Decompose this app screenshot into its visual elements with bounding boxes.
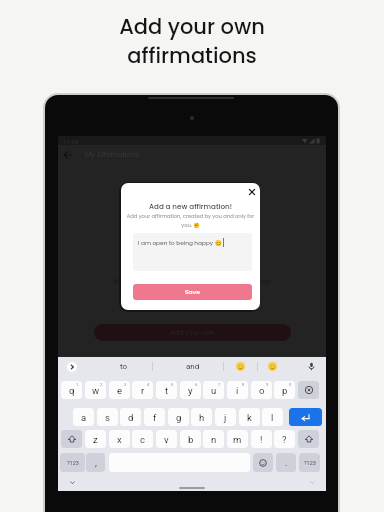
button[interactable]: m [227, 430, 248, 448]
button[interactable]: y [180, 381, 201, 399]
button[interactable]: Hide keyboard [68, 478, 77, 487]
button[interactable]: t [156, 381, 177, 399]
staticText: ? [282, 434, 287, 445]
button[interactable]: to [109, 357, 139, 376]
button[interactable]: w [85, 381, 106, 399]
staticText: Add a new affirmation! [149, 201, 233, 211]
button[interactable]: I am open to being happy 😊 [133, 233, 252, 271]
button[interactable]: f [144, 408, 165, 426]
button[interactable]: Voice input [307, 362, 316, 371]
button[interactable]: g [168, 408, 189, 426]
button[interactable]: ? [274, 430, 295, 448]
staticText: r [141, 385, 145, 396]
staticText: 4 [147, 382, 150, 387]
staticText: . [285, 457, 288, 468]
button[interactable]: Save [133, 284, 252, 300]
staticText: ?123 [304, 460, 316, 466]
button[interactable]: v [156, 430, 177, 448]
button[interactable]: More suggestions [67, 362, 77, 372]
staticText: k [247, 412, 252, 423]
staticText: x [117, 434, 122, 445]
button[interactable]: p [274, 381, 295, 399]
staticText: 1 [76, 382, 79, 387]
staticText: 8 [242, 382, 245, 387]
staticText: f [153, 412, 157, 423]
staticText: s [105, 412, 110, 423]
staticText: p [282, 385, 288, 396]
button[interactable]: Emoji [253, 453, 273, 472]
staticText: q [69, 385, 75, 396]
button[interactable]: . [276, 453, 296, 472]
button[interactable]: and [178, 357, 208, 376]
staticText: My Affirmations [85, 150, 140, 160]
button[interactable]: e [109, 381, 130, 399]
button[interactable]: a [73, 408, 94, 426]
button[interactable]: d [120, 408, 141, 426]
button[interactable]: Back [60, 146, 78, 164]
staticText: a [81, 412, 87, 423]
button[interactable]: j [215, 408, 236, 426]
button[interactable]: Close dialog [246, 186, 258, 198]
staticText: ! [260, 434, 263, 445]
button[interactable]: n [203, 430, 224, 448]
button[interactable]: r [132, 381, 153, 399]
staticText: 6 [195, 382, 198, 387]
button[interactable]: q [61, 381, 82, 399]
staticText: e [117, 385, 123, 396]
staticText: w [92, 385, 100, 396]
staticText: o [259, 385, 265, 396]
button[interactable]: o [251, 381, 272, 399]
staticText: Save [185, 288, 200, 296]
button[interactable] [236, 362, 245, 371]
button[interactable]: , [86, 453, 105, 472]
staticText: b [188, 434, 194, 445]
staticText: to [120, 362, 128, 371]
button[interactable]: Shift [61, 430, 82, 448]
staticText: i [236, 385, 239, 396]
staticText: 3 [124, 382, 127, 387]
staticText: I am open to being happy 😊 [138, 239, 222, 247]
staticText: 2 [100, 382, 103, 387]
staticText: y [188, 385, 193, 396]
staticText: j [224, 412, 227, 423]
staticText: l [271, 412, 274, 423]
button[interactable] [268, 362, 277, 371]
staticText: 7 [218, 382, 221, 387]
button[interactable]: z [85, 430, 106, 448]
button[interactable]: l [262, 408, 283, 426]
button[interactable]: ?123 [299, 453, 320, 472]
staticText: and [186, 362, 200, 371]
button[interactable]: k [239, 408, 260, 426]
staticText: c [140, 434, 145, 445]
staticText: Add your own affirmations [0, 12, 384, 70]
staticText: Add your own [170, 328, 215, 337]
staticText: z [93, 434, 98, 445]
staticText: d [128, 412, 134, 423]
button[interactable]: Enter [289, 408, 322, 426]
staticText: 0 [289, 382, 292, 387]
staticText: , [95, 457, 97, 468]
staticText: Add your affirmation, created by you and… [125, 213, 256, 229]
staticText: h [199, 412, 205, 423]
staticText: ?123 [67, 460, 79, 466]
staticText: 9 [266, 382, 269, 387]
button[interactable]: Shift [298, 430, 319, 448]
button[interactable]: ! [251, 430, 272, 448]
button[interactable]: Backspace [298, 381, 319, 399]
button[interactable]: x [109, 430, 130, 448]
button[interactable]: h [191, 408, 212, 426]
button[interactable]: b [180, 430, 201, 448]
button[interactable]: ?123 [60, 453, 85, 472]
button[interactable]: c [132, 430, 153, 448]
button[interactable]: u [203, 381, 224, 399]
staticText: n [211, 434, 217, 445]
button[interactable]: s [97, 408, 118, 426]
staticText: v [164, 434, 169, 445]
button[interactable]: i [227, 381, 248, 399]
staticText: m [233, 434, 242, 445]
staticText: Write your own affirmation with the + Ad… [113, 277, 271, 286]
staticText: t [165, 385, 169, 396]
